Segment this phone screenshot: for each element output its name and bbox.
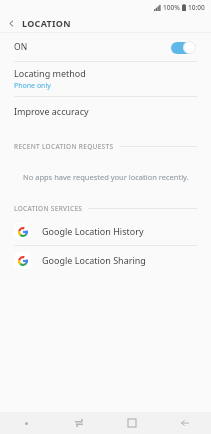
- staticText: LOCATION: [22, 17, 71, 29]
- staticText: No apps have requested your location rec…: [23, 172, 189, 182]
- button[interactable]: ON: [0, 33, 211, 61]
- staticText: Phone only: [14, 81, 51, 91]
- button[interactable]: Menu indicator: [0, 412, 52, 434]
- staticText: ON: [14, 41, 28, 53]
- staticText: 100%: [163, 3, 180, 12]
- staticText: Google Location History: [42, 225, 144, 237]
- staticText: Google Location Sharing: [42, 254, 146, 266]
- staticText: Locating method: [14, 67, 86, 79]
- button[interactable]: Home: [105, 412, 158, 434]
- button[interactable]: Improve accuracy: [0, 97, 211, 125]
- staticText: Improve accuracy: [14, 105, 89, 117]
- button[interactable]: Locating method: [0, 62, 211, 96]
- staticText: 10:00: [188, 3, 205, 12]
- button[interactable]: Back: [0, 14, 22, 32]
- staticText: RECENT LOCATION REQUESTS: [14, 142, 114, 151]
- button[interactable]: Recent apps: [52, 412, 105, 434]
- staticText: LOCATION SERVICES: [14, 204, 83, 213]
- button[interactable]: Back: [158, 412, 211, 434]
- button[interactable]: Google Location Sharing: [0, 246, 211, 274]
- button[interactable]: Google Location History: [0, 217, 211, 245]
